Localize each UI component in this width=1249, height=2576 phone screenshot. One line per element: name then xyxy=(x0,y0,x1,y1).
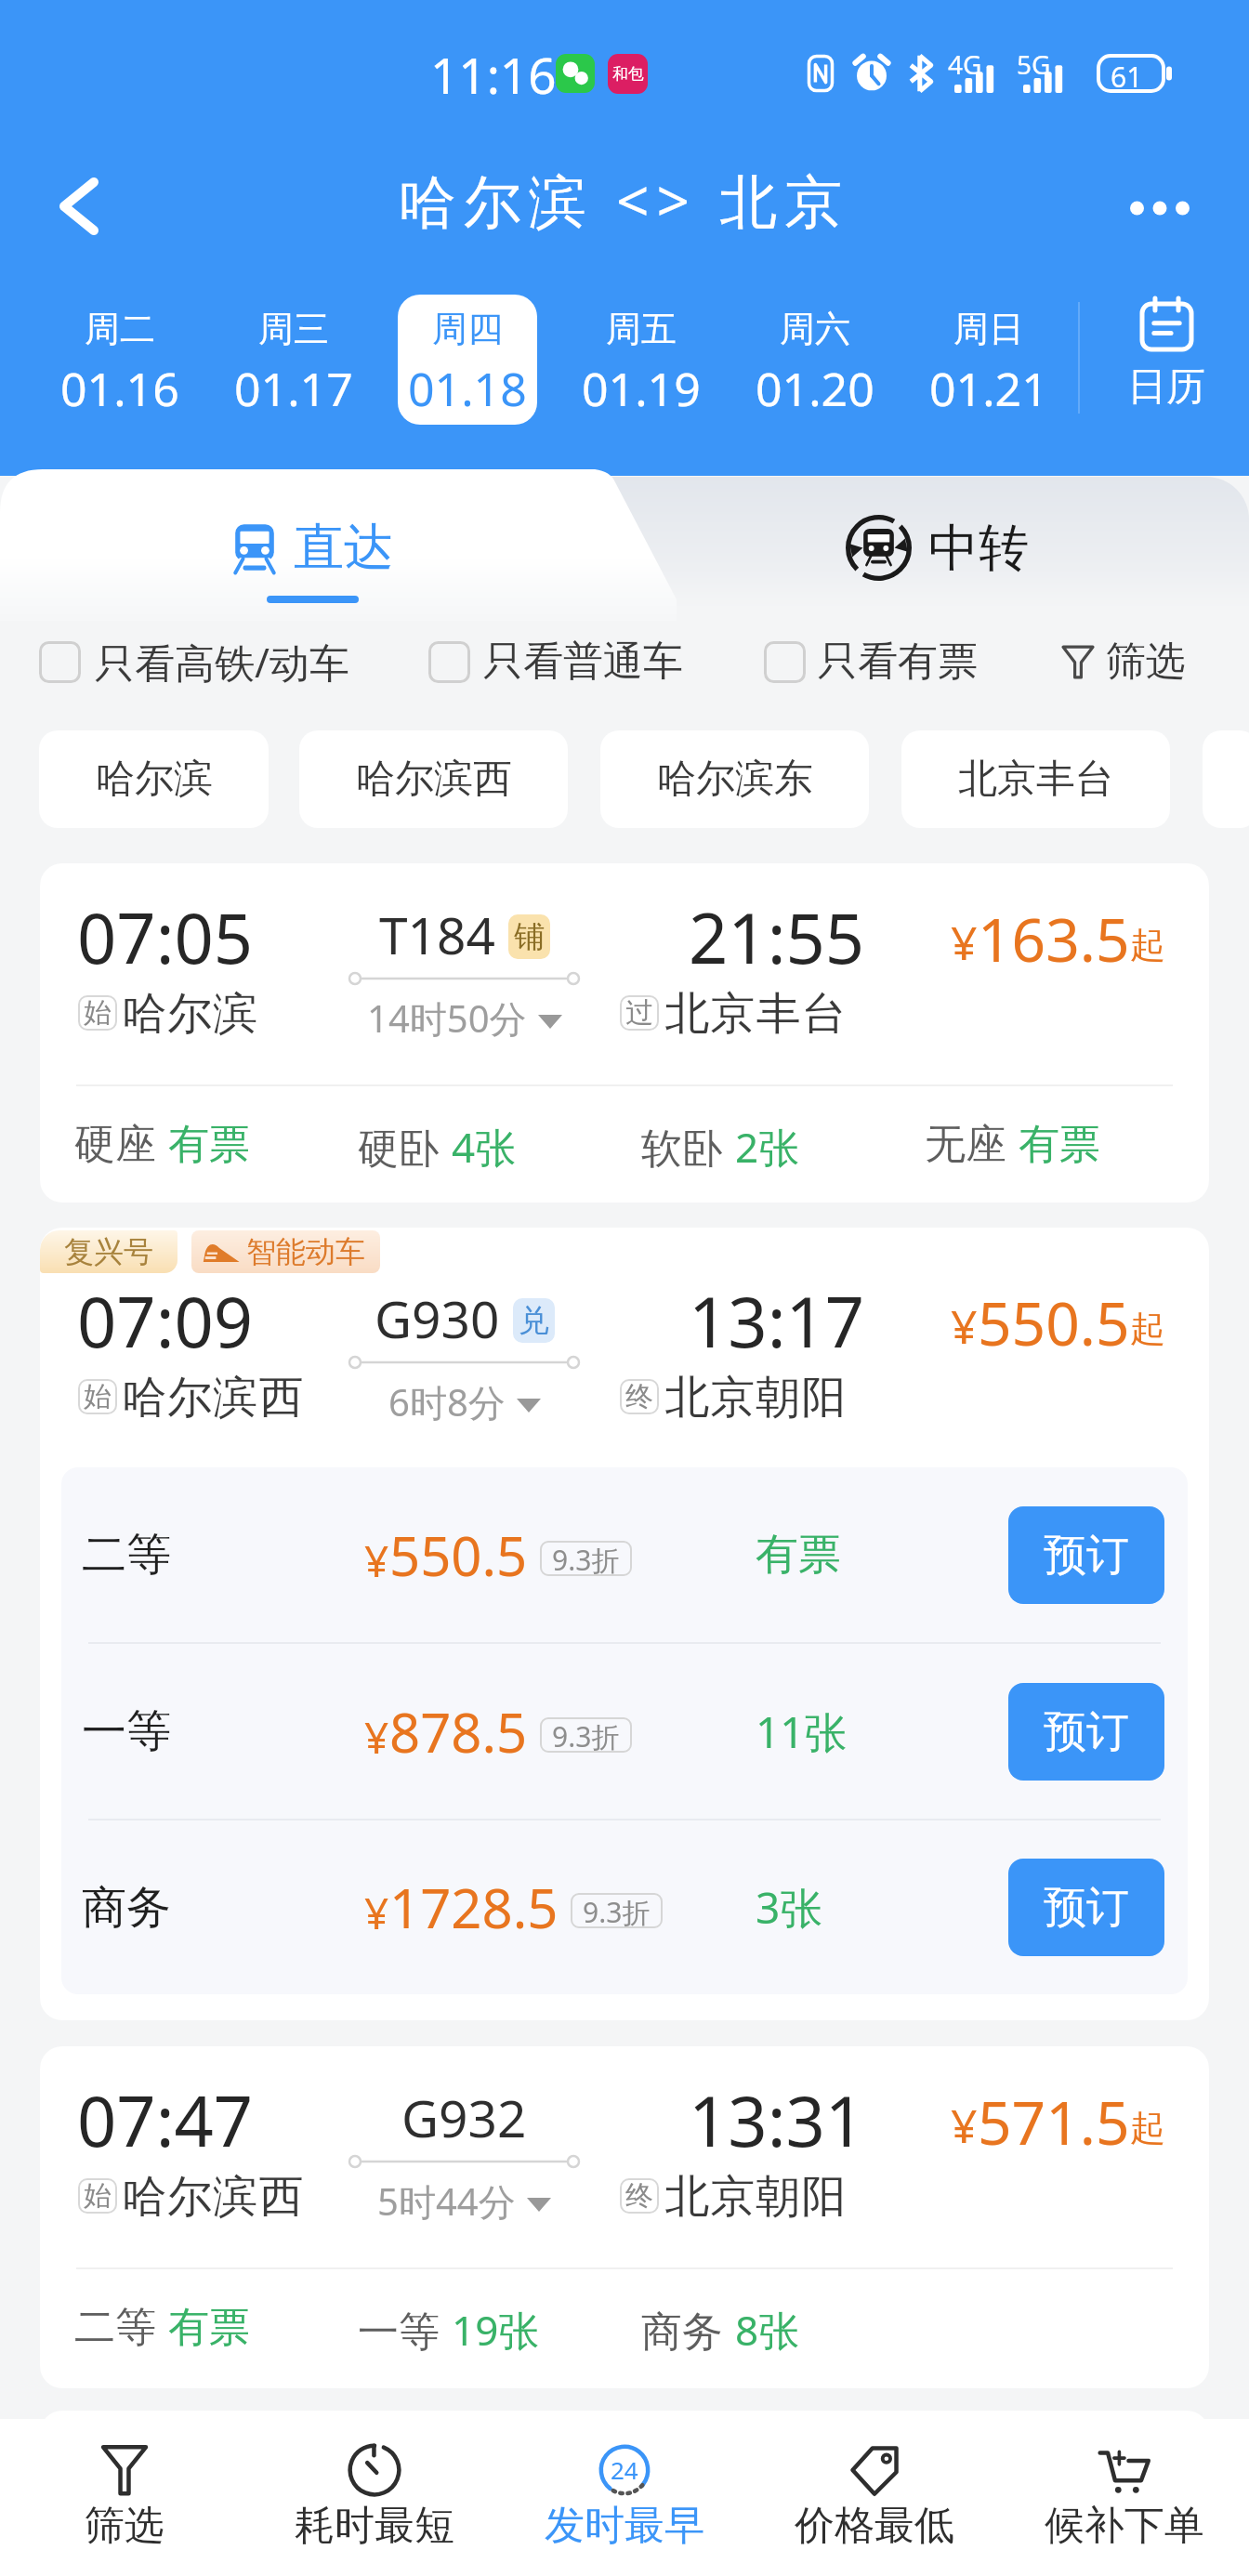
button[interactable]: 复兴号 xyxy=(40,1228,1209,2020)
staticText: 21:55 xyxy=(689,890,865,984)
staticText: 哈尔滨西 xyxy=(122,2169,304,2225)
staticText: 周六 xyxy=(780,307,850,351)
staticText: 有票 xyxy=(168,1119,250,1170)
staticText: 01.18 xyxy=(408,357,527,420)
staticText: 终 xyxy=(625,2178,653,2214)
staticText: 铺 xyxy=(514,917,545,956)
staticText: 过 xyxy=(625,995,653,1031)
staticText: 4G xyxy=(948,46,982,82)
button[interactable] xyxy=(428,621,681,703)
staticText: 起 xyxy=(1130,923,1165,967)
staticText: 商务 xyxy=(641,2307,723,2358)
staticText: 571.5 xyxy=(978,2082,1130,2162)
staticText: 哈尔滨 xyxy=(122,986,258,1042)
button[interactable]: 耗时最短 xyxy=(249,2419,499,2576)
staticText: 商务 xyxy=(82,1880,171,1936)
staticText: 始 xyxy=(84,2178,112,2214)
staticText: 周二 xyxy=(85,307,155,351)
staticText: 北京朝阳 xyxy=(664,2169,847,2225)
staticText: 日历 xyxy=(1127,362,1205,412)
staticText: 01.17 xyxy=(234,357,353,420)
staticText: 11张 xyxy=(756,1702,848,1761)
staticText: 周三 xyxy=(258,307,329,351)
button[interactable]: 07:05 xyxy=(40,863,1209,1203)
button[interactable]: Back xyxy=(19,149,139,264)
staticText: 19张 xyxy=(452,2302,540,2358)
staticText: 预订 xyxy=(1044,1705,1129,1759)
staticText: 61 xyxy=(1111,58,1143,96)
staticText: 北京丰台 xyxy=(664,986,847,1042)
button[interactable]: 中转 xyxy=(624,487,1249,608)
staticText: 哈尔滨 xyxy=(96,755,213,804)
button[interactable]: 哈尔滨西 xyxy=(299,730,568,828)
button[interactable] xyxy=(39,621,371,703)
button[interactable]: 筛选 xyxy=(0,2419,249,2576)
button[interactable]: 预订 xyxy=(1008,1506,1164,1604)
button[interactable]: 筛选 xyxy=(1062,637,1186,687)
staticText: 硬卧 xyxy=(358,1124,440,1175)
staticText: ¥ xyxy=(951,911,978,974)
button[interactable]: 北京丰台 xyxy=(901,730,1170,828)
staticText: 始 xyxy=(84,995,112,1031)
staticText: 预订 xyxy=(1044,1881,1129,1935)
button[interactable]: 周四 xyxy=(398,295,537,425)
staticText: 01.19 xyxy=(582,357,701,420)
staticText: 14时50分 xyxy=(367,992,527,1044)
staticText: 起 xyxy=(1130,1307,1165,1351)
staticText: G930 xyxy=(375,1283,500,1353)
button[interactable]: 日历 xyxy=(1097,298,1236,438)
staticText: 周日 xyxy=(953,307,1024,351)
staticText: 13:31 xyxy=(689,2073,865,2167)
staticText: 07:05 xyxy=(77,890,254,984)
button[interactable]: 周六 xyxy=(745,295,885,425)
staticText: 哈尔滨西 xyxy=(356,755,512,804)
staticText: 耗时最短 xyxy=(295,2501,454,2551)
staticText: 07:09 xyxy=(77,1274,254,1368)
staticText: 13:17 xyxy=(689,1274,865,1368)
button[interactable]: 哈尔滨东 xyxy=(600,730,869,828)
button[interactable]: 直达 xyxy=(0,487,624,608)
button[interactable]: 周五 xyxy=(572,295,711,425)
button[interactable]: 周二 xyxy=(50,295,190,425)
button[interactable]: 预订 xyxy=(1008,1683,1164,1781)
button[interactable]: More options xyxy=(1097,151,1222,266)
staticText: 1728.5 xyxy=(389,1871,559,1944)
staticText: 哈尔滨东 xyxy=(657,755,813,804)
staticText: 哈尔滨西 xyxy=(122,1370,304,1426)
staticText: 5时44分 xyxy=(377,2175,516,2227)
staticText: 01.20 xyxy=(756,357,874,420)
button[interactable]: 07:47 xyxy=(40,2046,1209,2388)
staticText: 周五 xyxy=(606,307,677,351)
staticText: 和包 xyxy=(612,64,644,84)
staticText: 550.5 xyxy=(389,1518,528,1592)
staticText: ¥ xyxy=(951,2094,978,2157)
staticText: 周四 xyxy=(432,307,503,351)
staticText: 163.5 xyxy=(978,899,1130,979)
staticText: 9.3折 xyxy=(552,1717,620,1753)
staticText: 二等 xyxy=(74,2302,156,2353)
button[interactable]: 预订 xyxy=(1008,1859,1164,1956)
staticText: 只看高铁/动车 xyxy=(95,635,349,690)
staticText: 550.5 xyxy=(978,1282,1130,1363)
button[interactable]: 价格最低 xyxy=(749,2419,999,2576)
staticText: 筛选 xyxy=(1106,637,1186,687)
staticText: 8张 xyxy=(735,2302,800,2358)
staticText: T184 xyxy=(379,900,495,969)
button[interactable] xyxy=(764,621,977,703)
button[interactable]: 候补下单 xyxy=(999,2419,1249,2576)
staticText: 起 xyxy=(1130,2106,1165,2150)
button[interactable]: 24 xyxy=(499,2419,749,2576)
staticText: 候补下单 xyxy=(1045,2501,1204,2551)
staticText: G932 xyxy=(401,2083,527,2152)
staticText: 北京丰台 xyxy=(958,755,1114,804)
staticText: 5G xyxy=(1017,46,1051,82)
staticText: 有票 xyxy=(756,1528,841,1582)
staticText: 01.21 xyxy=(929,357,1048,420)
staticText: 始 xyxy=(84,1379,112,1414)
staticText: ¥ xyxy=(364,1531,389,1590)
staticText: 只看有票 xyxy=(818,637,978,687)
button[interactable]: 周三 xyxy=(224,295,363,425)
button[interactable]: 周日 xyxy=(919,295,1058,425)
button[interactable]: 哈尔滨 xyxy=(39,730,269,828)
staticText: 预订 xyxy=(1044,1529,1129,1583)
